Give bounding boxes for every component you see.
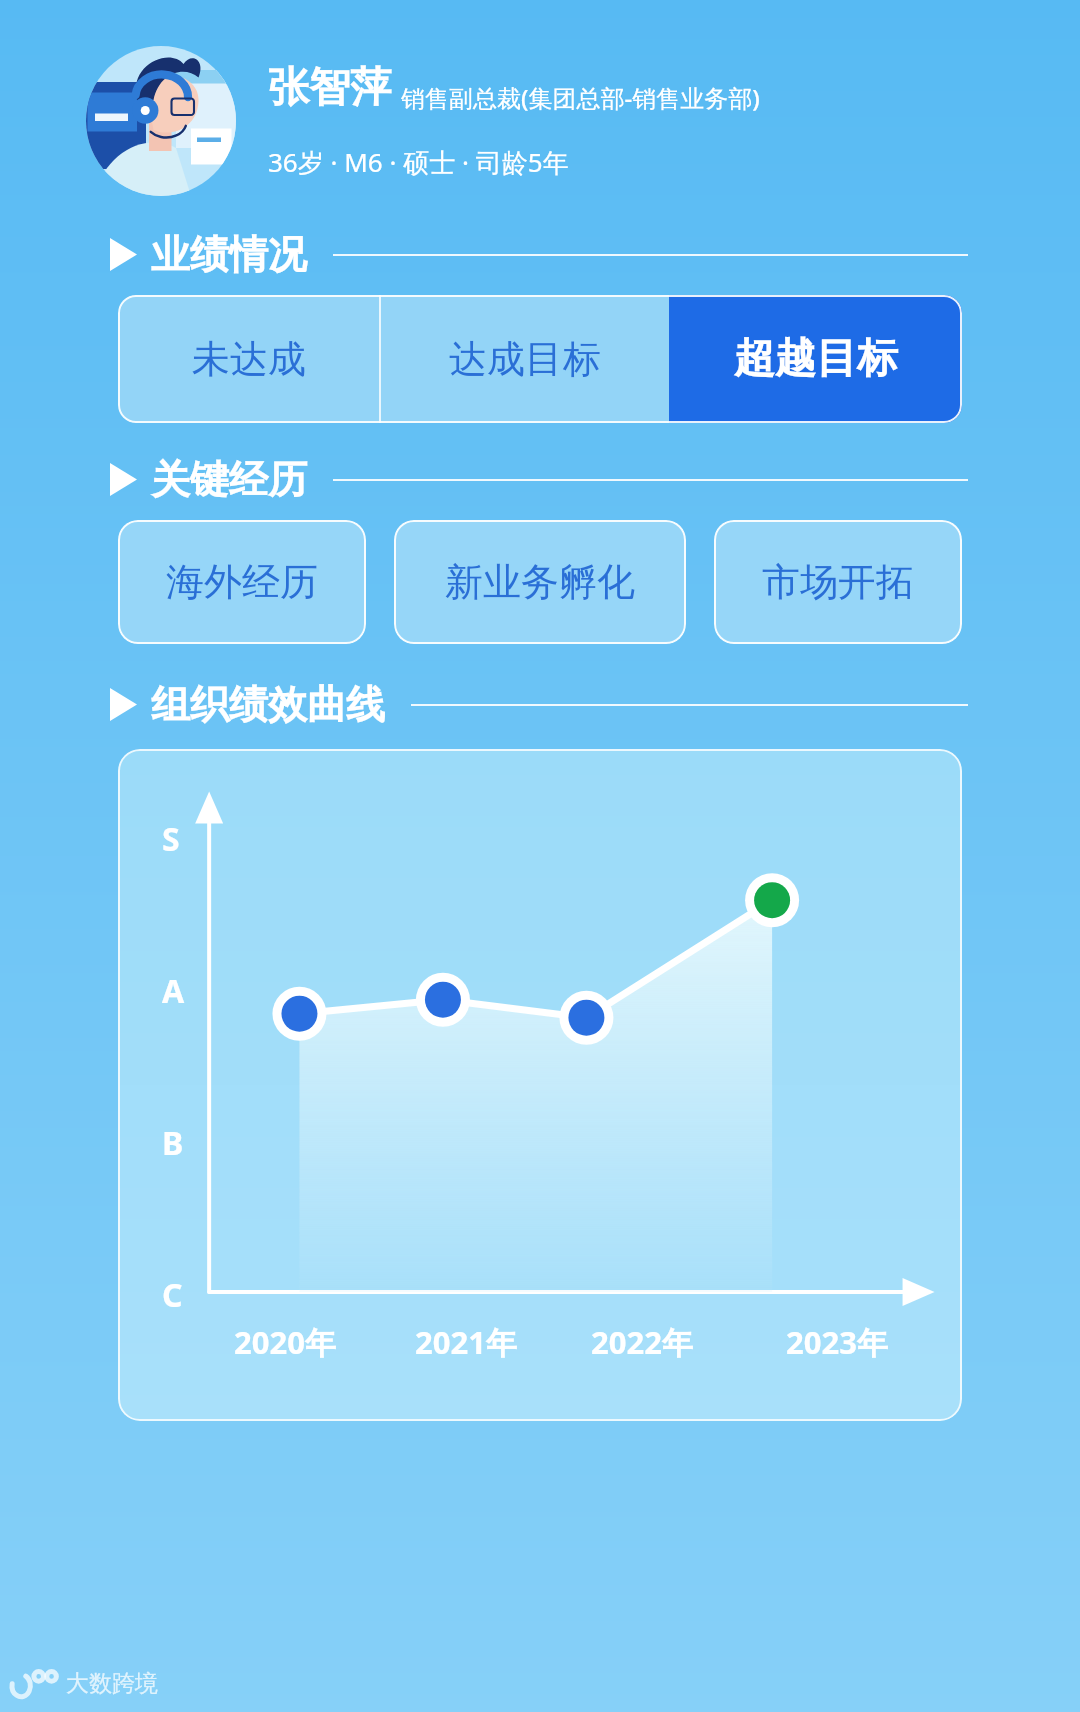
staticText: 新业务孵化	[445, 558, 635, 606]
staticText: 2020年	[234, 1321, 336, 1363]
staticText: C	[162, 1273, 183, 1317]
staticText: 销售副总裁(集团总部-销售业务部)	[401, 81, 760, 114]
button[interactable]: 市场开拓	[714, 520, 962, 644]
staticText: 36岁 · M6 · 硕士 · 司龄5年	[268, 144, 569, 180]
staticText: 大数跨境	[66, 1669, 158, 1698]
button[interactable]: 未达成	[118, 295, 379, 423]
staticText: 业绩情况	[151, 230, 307, 279]
staticText: B	[162, 1121, 184, 1165]
staticText: 关键经历	[151, 455, 307, 504]
staticText: 市场开拓	[762, 558, 914, 606]
staticText: 超越目标	[734, 333, 898, 385]
staticText: 张智萍	[268, 62, 391, 114]
button[interactable]: 达成目标	[381, 295, 669, 423]
staticText: S	[162, 817, 180, 861]
staticText: 2023年	[786, 1321, 888, 1363]
button[interactable]: 海外经历	[118, 520, 366, 644]
staticText: 组织绩效曲线	[151, 680, 385, 729]
staticText: 海外经历	[166, 558, 318, 606]
staticText: 2021年	[415, 1321, 517, 1363]
staticText: 未达成	[192, 335, 306, 383]
staticText: 2022年	[591, 1321, 693, 1363]
button[interactable]: 新业务孵化	[394, 520, 686, 644]
staticText: 达成目标	[449, 335, 601, 383]
staticText: A	[162, 969, 185, 1013]
button[interactable]: 超越目标	[669, 295, 962, 423]
button[interactable]: S	[118, 749, 962, 1421]
